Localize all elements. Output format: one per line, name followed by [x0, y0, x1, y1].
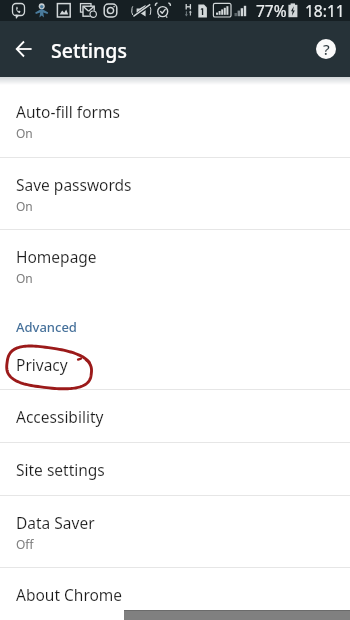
- button[interactable]: Save passwords: [0, 158, 350, 229]
- staticText: Advanced: [16, 318, 77, 336]
- button[interactable]: Data Saver: [0, 496, 350, 567]
- staticText: ?: [323, 39, 330, 59]
- staticText: Privacy: [16, 354, 68, 375]
- staticText: Off: [16, 536, 34, 552]
- staticText: Auto-fill forms: [16, 101, 120, 122]
- staticText: Homepage: [16, 246, 97, 267]
- button[interactable]: Homepage: [0, 230, 350, 301]
- staticText: On: [16, 270, 33, 286]
- staticText: 18:11: [305, 0, 345, 21]
- staticText: Data Saver: [16, 512, 95, 533]
- staticText: Site settings: [16, 459, 105, 480]
- button[interactable]: Site settings: [0, 443, 350, 495]
- button[interactable]: Back: [8, 33, 40, 65]
- staticText: Accessibility: [16, 406, 104, 427]
- button[interactable]: Accessibility: [0, 390, 350, 442]
- button[interactable]: Auto-fill forms: [0, 85, 350, 157]
- button[interactable]: About Chrome: [0, 568, 350, 620]
- staticText: Settings: [51, 37, 127, 64]
- staticText: About Chrome: [16, 584, 123, 605]
- button[interactable]: Help: [310, 33, 342, 65]
- button[interactable]: Privacy: [0, 340, 350, 389]
- staticText: Save passwords: [16, 174, 132, 195]
- staticText: On: [16, 198, 33, 214]
- staticText: 77%: [256, 0, 287, 21]
- staticText: On: [16, 125, 33, 141]
